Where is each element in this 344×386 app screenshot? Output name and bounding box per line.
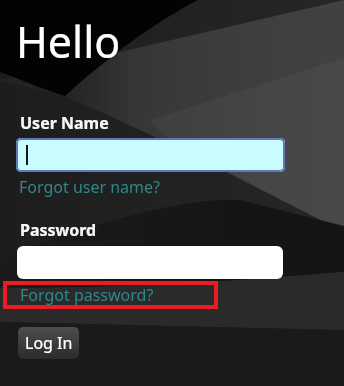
staticText: Hello: [16, 12, 121, 71]
staticText: Password: [20, 219, 97, 241]
button[interactable]: [16, 138, 285, 172]
staticText: Log In: [25, 332, 73, 354]
button[interactable]: [17, 246, 283, 279]
staticText: Forgot password?: [20, 284, 154, 306]
button[interactable]: Log In: [18, 327, 79, 359]
staticText: User Name: [20, 112, 109, 134]
button[interactable]: Forgot password?: [3, 281, 218, 309]
button[interactable]: Forgot user name?: [19, 176, 161, 198]
